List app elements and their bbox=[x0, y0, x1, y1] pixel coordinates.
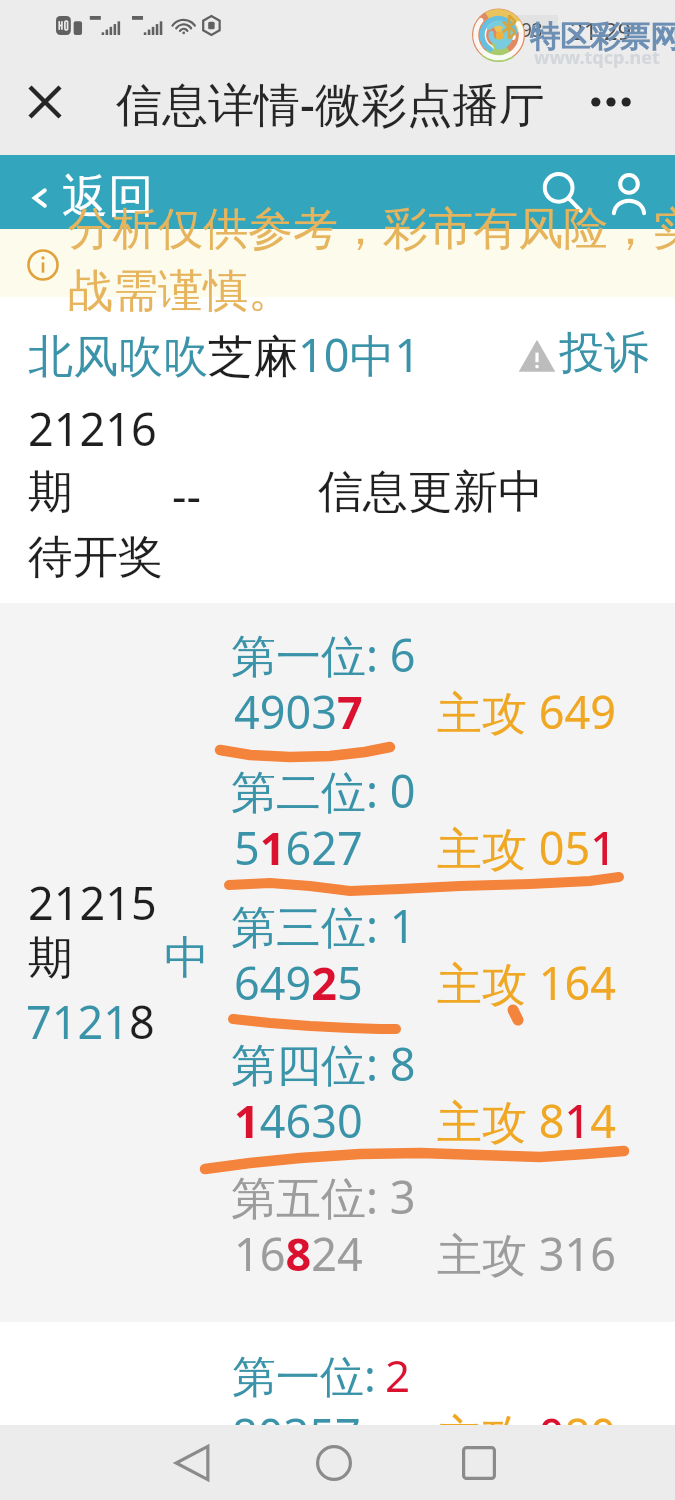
staticText: 主攻 814 bbox=[437, 1090, 616, 1151]
staticText: 信息详情-微彩点播厅 bbox=[116, 72, 545, 135]
staticText: 第一位: 6 bbox=[231, 624, 416, 685]
staticText: 分析仅供参考，彩市有风险，实 bbox=[68, 201, 675, 258]
staticText: 2 bbox=[385, 1345, 411, 1405]
button[interactable]: 投诉 bbox=[518, 326, 646, 383]
staticText: 第一位: bbox=[232, 1345, 388, 1405]
staticText: 主攻 051 bbox=[437, 817, 616, 878]
staticText: 中 bbox=[164, 930, 209, 987]
staticText: 期 bbox=[28, 464, 73, 521]
staticText: 51627 bbox=[234, 817, 363, 878]
staticText: www.tqcp.net bbox=[534, 45, 660, 70]
staticText: 特区彩票网 bbox=[530, 18, 675, 56]
staticText: 21:29 bbox=[570, 14, 632, 47]
button[interactable]: Back bbox=[150, 1430, 234, 1496]
button[interactable]: Search bbox=[530, 160, 594, 224]
staticText: -- bbox=[172, 464, 201, 525]
staticText: 71218 bbox=[26, 991, 155, 1052]
staticText: 主攻 164 bbox=[437, 952, 616, 1013]
button[interactable]: Account bbox=[597, 162, 661, 226]
staticText: 16824 bbox=[234, 1223, 363, 1284]
staticText: 投诉 bbox=[559, 325, 649, 382]
staticText: 第二位: 0 bbox=[231, 760, 416, 821]
staticText: 待开奖 bbox=[28, 529, 163, 586]
button[interactable]: Recent apps bbox=[437, 1430, 521, 1496]
staticText: 主攻 316 bbox=[437, 1223, 616, 1284]
staticText: 主攻 080 bbox=[437, 1404, 616, 1465]
staticText: 信息更新中 bbox=[318, 464, 543, 521]
staticText: 80357 bbox=[232, 1404, 361, 1465]
staticText: 第五位: 3 bbox=[231, 1166, 416, 1227]
staticText: 93 bbox=[521, 17, 543, 43]
button[interactable]: Close bbox=[20, 77, 70, 127]
staticText: 期 bbox=[28, 930, 73, 987]
button[interactable]: More options bbox=[588, 82, 634, 122]
staticText: 21215 bbox=[28, 872, 157, 933]
staticText: 主攻 649 bbox=[437, 681, 616, 742]
staticText: 返回 bbox=[62, 168, 154, 226]
staticText: 第四位: 8 bbox=[231, 1033, 416, 1094]
button[interactable]: Home bbox=[292, 1430, 376, 1496]
staticText: 14630 bbox=[234, 1090, 363, 1151]
staticText: 战需谨慎。 bbox=[68, 263, 293, 320]
staticText: 21216 bbox=[28, 398, 157, 459]
staticText: 第三位: 1 bbox=[231, 895, 416, 956]
staticText: 49037 bbox=[234, 681, 363, 742]
button[interactable]: 返回 bbox=[30, 169, 154, 227]
staticText: 北风吹吹芝麻10中1 bbox=[28, 324, 421, 385]
staticText: 64925 bbox=[234, 952, 363, 1013]
